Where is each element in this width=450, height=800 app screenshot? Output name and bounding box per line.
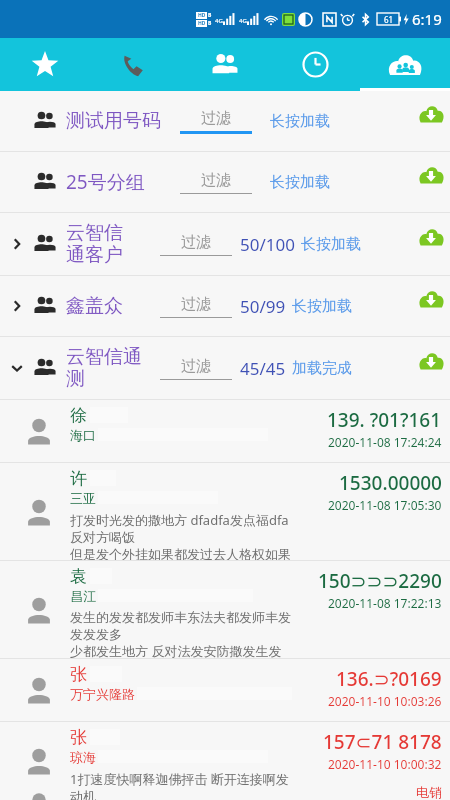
staticText: 25号分组 bbox=[66, 169, 145, 195]
staticText: B bbox=[208, 12, 212, 19]
button[interactable]: 长按加载 bbox=[292, 297, 352, 316]
button[interactable]: 长按加载 bbox=[270, 112, 330, 131]
staticText: 琼海 bbox=[70, 749, 96, 765]
staticText: 电销 bbox=[416, 784, 442, 800]
button[interactable]: 长按加载 bbox=[270, 173, 330, 192]
button[interactable]: 云智信 通客户 bbox=[0, 213, 450, 275]
button[interactable]: 过滤 bbox=[160, 233, 232, 256]
staticText: 三亚 bbox=[70, 490, 96, 506]
button[interactable]: Dialer bbox=[90, 38, 180, 91]
staticText: B bbox=[208, 20, 212, 27]
staticText: 袁 bbox=[70, 566, 87, 587]
staticText: 136.⊃?0169 bbox=[336, 666, 442, 692]
staticText: 昌江 bbox=[70, 588, 96, 604]
staticText: 长按加载 bbox=[270, 173, 330, 192]
staticText: 加载完成 bbox=[292, 359, 352, 378]
staticText: 45/45 bbox=[240, 357, 286, 380]
button[interactable]: 过滤 bbox=[180, 171, 252, 194]
button[interactable]: 徐 bbox=[0, 400, 450, 462]
button[interactable]: 过滤 bbox=[180, 109, 252, 134]
staticText: 长按加载 bbox=[270, 112, 330, 131]
staticText: 发生的发发都发师丰东法夫都发师丰发发发发多 少都发生地方 反对法发安防撒发生发撒… bbox=[70, 609, 292, 658]
button[interactable]: Download group bbox=[418, 351, 444, 371]
staticText: 海口 bbox=[70, 427, 96, 443]
button[interactable]: 云智信通 测 bbox=[0, 337, 450, 399]
button[interactable]: 加载完成 bbox=[292, 359, 352, 378]
staticText: 150⊃⊃⊃2290 bbox=[318, 568, 442, 594]
button[interactable]: Download group bbox=[418, 104, 444, 124]
staticText: 1530.00000 bbox=[339, 470, 442, 496]
staticText: 长按加载 bbox=[292, 297, 352, 316]
staticText: 2020-11-10 10:00:32 bbox=[328, 756, 442, 772]
staticText: 过滤 bbox=[181, 295, 211, 314]
button[interactable]: Contacts bbox=[180, 38, 270, 91]
staticText: 张 bbox=[70, 664, 87, 685]
staticText: 过滤 bbox=[201, 171, 231, 190]
staticText: 徐 bbox=[70, 405, 87, 426]
button[interactable]: 张 bbox=[0, 659, 450, 721]
staticText: HD bbox=[198, 12, 206, 19]
button[interactable]: Download group bbox=[418, 165, 444, 185]
staticText: 2020-11-08 17:22:13 bbox=[328, 595, 442, 611]
button[interactable]: 鑫盖众 bbox=[0, 276, 450, 336]
staticText: 139. ?01?161 bbox=[327, 407, 442, 433]
staticText: 50/100 bbox=[240, 233, 295, 256]
staticText: 1打速度快啊释迦佛抨击 断开连接啊发动机 bbox=[70, 770, 292, 800]
button[interactable]: 过滤 bbox=[160, 295, 232, 318]
staticText: 2020-11-10 10:03:26 bbox=[328, 693, 442, 709]
staticText: 许 bbox=[70, 468, 87, 489]
staticText: 过滤 bbox=[201, 109, 231, 128]
button[interactable]: Favorites bbox=[0, 38, 90, 91]
staticText: 鑫盖众 bbox=[66, 294, 123, 318]
button[interactable]: Cloud contacts bbox=[360, 38, 450, 91]
staticText: 云智信通 测 bbox=[66, 345, 142, 391]
button[interactable]: Download group bbox=[418, 227, 444, 247]
staticText: 4G bbox=[215, 17, 223, 25]
staticText: 50/99 bbox=[240, 295, 286, 318]
staticText: 云智信 通客户 bbox=[66, 221, 123, 267]
staticText: 打发时光发的撒地方 dfadfa发点福dfa反对方喝饭 但是发个外挂如果都发过去… bbox=[70, 511, 292, 560]
staticText: 长按加载 bbox=[301, 235, 361, 254]
staticText: 万宁兴隆路 bbox=[70, 686, 135, 702]
button[interactable]: 25号分组 bbox=[0, 152, 450, 212]
staticText: 157⊂71 8178 bbox=[323, 729, 442, 755]
button[interactable]: 过滤 bbox=[160, 357, 232, 380]
button[interactable]: 张 bbox=[0, 722, 450, 800]
staticText: 2020-11-08 17:05:30 bbox=[328, 497, 442, 513]
staticText: HD bbox=[198, 20, 206, 27]
staticText: 2020-11-08 17:24:24 bbox=[328, 434, 442, 450]
staticText: 6:19 bbox=[412, 9, 442, 29]
button[interactable]: 测试用号码 bbox=[0, 91, 450, 151]
staticText: 张 bbox=[70, 727, 87, 748]
button[interactable]: Download group bbox=[418, 289, 444, 309]
staticText: 过滤 bbox=[181, 357, 211, 376]
staticText: 61 bbox=[384, 14, 394, 25]
button[interactable]: 长按加载 bbox=[301, 235, 361, 254]
staticText: 过滤 bbox=[181, 233, 211, 252]
button[interactable]: Recents bbox=[270, 38, 360, 91]
staticText: 4G bbox=[239, 17, 247, 25]
button[interactable]: 许 bbox=[0, 463, 450, 560]
staticText: 测试用号码 bbox=[66, 109, 161, 133]
button[interactable]: 袁 bbox=[0, 561, 450, 658]
